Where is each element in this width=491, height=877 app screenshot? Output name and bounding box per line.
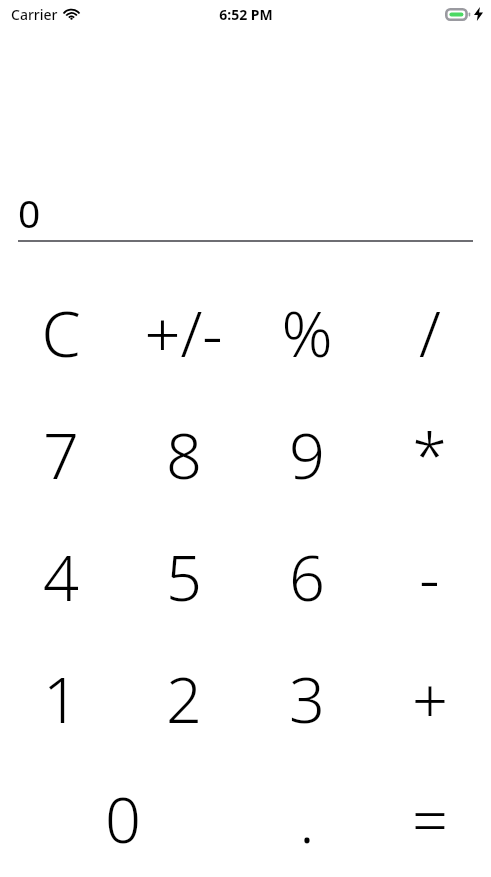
staticText: 5 xyxy=(166,534,202,620)
button[interactable]: Multiply xyxy=(368,394,491,516)
staticText: 7 xyxy=(43,412,79,498)
staticText: 6:52 PM xyxy=(219,5,273,24)
staticText: 4 xyxy=(43,534,79,620)
staticText: C xyxy=(41,290,81,376)
staticText: +/- xyxy=(144,290,223,376)
button[interactable]: 5 xyxy=(122,516,245,638)
staticText: 2 xyxy=(166,656,202,742)
button[interactable]: 3 xyxy=(245,638,368,760)
staticText: 6 xyxy=(289,534,325,620)
staticText: + xyxy=(412,656,448,742)
button[interactable]: Subtract xyxy=(368,516,491,638)
staticText: . xyxy=(299,776,315,862)
staticText: 9 xyxy=(289,412,325,498)
button[interactable]: 8 xyxy=(122,394,245,516)
staticText: 0 xyxy=(18,186,41,234)
staticText: 0 xyxy=(105,776,141,862)
button[interactable]: 1 xyxy=(0,638,122,760)
staticText: 3 xyxy=(289,656,325,742)
button[interactable]: 6 xyxy=(245,516,368,638)
button[interactable]: Decimal point xyxy=(245,760,368,877)
staticText: = xyxy=(412,776,448,862)
staticText: 1 xyxy=(43,656,79,742)
staticText: * xyxy=(412,412,447,498)
button[interactable]: 7 xyxy=(0,394,122,516)
button[interactable]: 0 xyxy=(0,760,245,877)
button[interactable]: Toggle sign xyxy=(122,272,245,394)
staticText: % xyxy=(281,290,333,376)
button[interactable]: 4 xyxy=(0,516,122,638)
button[interactable]: 2 xyxy=(122,638,245,760)
button[interactable]: Clear xyxy=(0,272,122,394)
staticText: Carrier xyxy=(11,5,58,24)
button[interactable]: 9 xyxy=(245,394,368,516)
button[interactable]: Add xyxy=(368,638,491,760)
button[interactable]: Equals xyxy=(368,760,491,877)
button[interactable]: Divide xyxy=(368,272,491,394)
staticText: - xyxy=(419,534,440,620)
button[interactable]: Percent xyxy=(245,272,368,394)
staticText: / xyxy=(419,290,441,376)
staticText: 8 xyxy=(166,412,202,498)
